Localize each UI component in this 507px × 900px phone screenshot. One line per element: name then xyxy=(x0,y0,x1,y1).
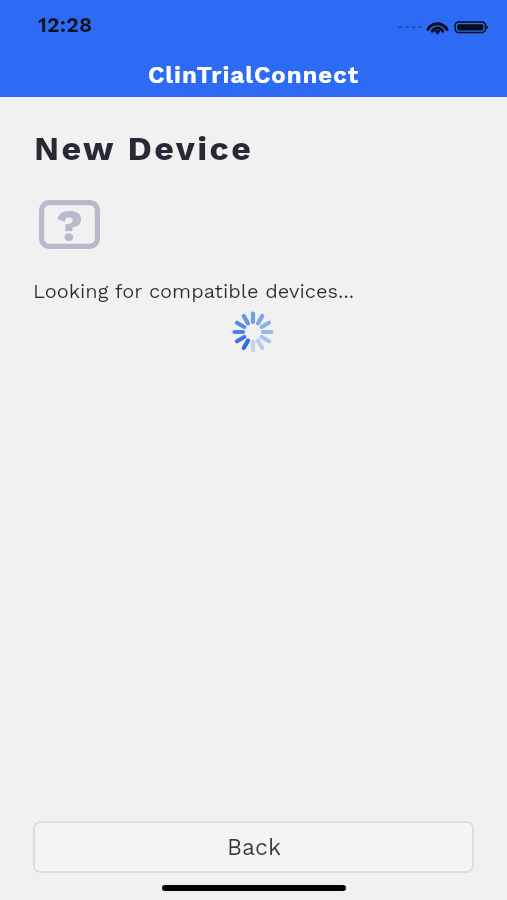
staticText: Looking for compatible devices... xyxy=(33,279,355,302)
staticText: ? xyxy=(56,200,83,248)
other: Unknown device xyxy=(39,200,100,249)
staticText: Back xyxy=(227,834,281,861)
staticText: 12:28 xyxy=(38,12,93,37)
staticText: New Device xyxy=(34,128,254,168)
button[interactable]: Back xyxy=(33,821,474,873)
staticText: ClinTrialConnect xyxy=(148,61,360,89)
